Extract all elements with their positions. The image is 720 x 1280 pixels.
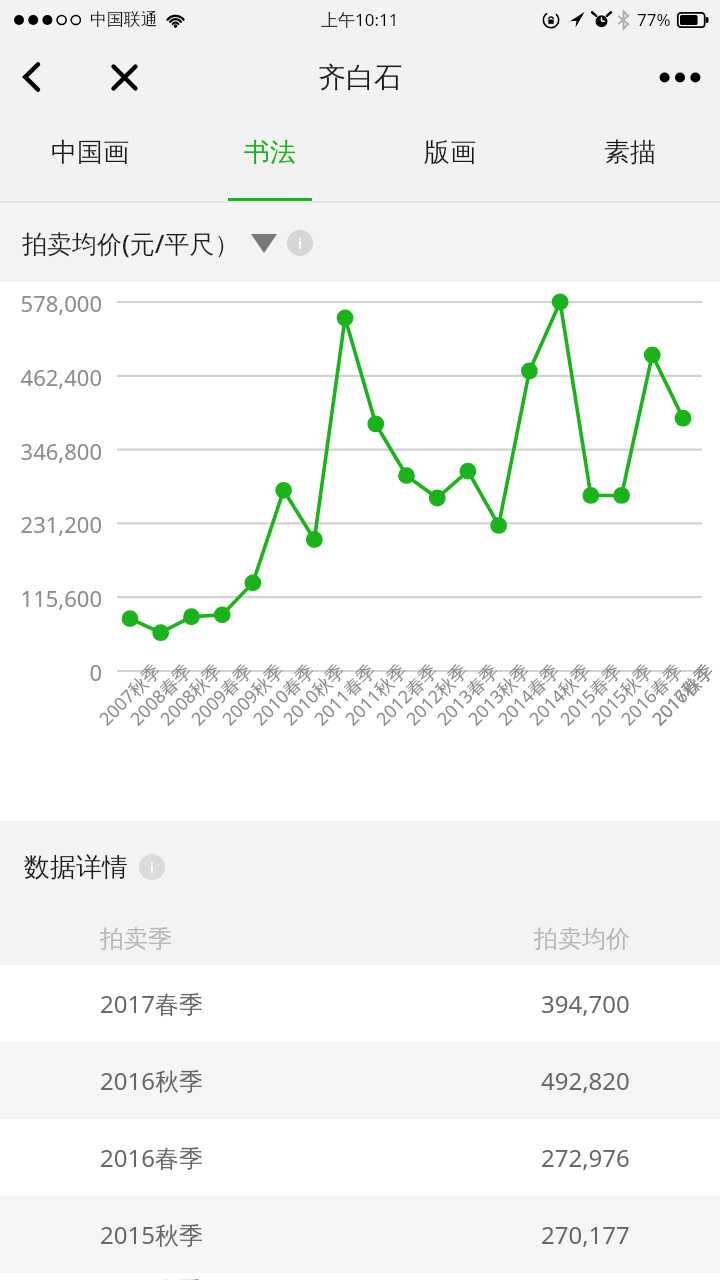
staticText: 115,600: [0, 583, 102, 613]
staticText: 2015春季: [100, 1273, 203, 1280]
staticText: 578,000: [0, 288, 102, 318]
button[interactable]: 书法: [180, 116, 360, 203]
staticText: 齐白石: [318, 60, 402, 95]
staticText: 版画: [424, 136, 476, 169]
staticText: 书法: [244, 136, 296, 169]
staticText: 2014春季: [493, 658, 565, 731]
staticText: 素描: [604, 136, 656, 169]
staticText: 2015春季: [555, 658, 627, 731]
staticText: 拍卖均价(元/平尺）: [22, 226, 240, 260]
button[interactable]: 2016春季: [0, 1119, 720, 1196]
button[interactable]: 拍卖均价(元/平尺）: [22, 226, 313, 260]
staticText: 2014秋季: [524, 658, 596, 731]
staticText: 270,177: [541, 1218, 630, 1251]
button[interactable]: Info: [287, 230, 313, 256]
staticText: 2011春季: [309, 658, 381, 731]
staticText: i: [150, 857, 154, 877]
staticText: 2012春季: [371, 658, 443, 731]
button[interactable]: 中国画: [0, 116, 180, 203]
staticText: 346,800: [0, 436, 102, 466]
staticText: 394,700: [541, 987, 630, 1020]
staticText: 2017春季: [100, 987, 203, 1020]
staticText: 2012秋季: [401, 658, 473, 731]
staticText: 中国联通: [90, 9, 158, 30]
staticText: 拍卖均价: [534, 924, 630, 954]
staticText: 2016秋季: [100, 1064, 203, 1097]
staticText: 2016春季: [100, 1141, 203, 1174]
button[interactable]: Close: [98, 51, 150, 103]
staticText: 2011秋季: [340, 658, 412, 731]
staticText: 2017春季: [647, 658, 719, 731]
staticText: i: [298, 233, 302, 253]
staticText: 0: [0, 657, 102, 687]
staticText: 492,820: [541, 1064, 630, 1097]
button[interactable]: 2016秋季: [0, 1042, 720, 1119]
staticText: 272,976: [541, 1141, 630, 1174]
staticText: 2016春季: [616, 658, 688, 731]
staticText: 上午10:11: [321, 8, 399, 31]
staticText: 77%: [637, 8, 671, 31]
staticText: 2015秋季: [100, 1218, 203, 1251]
button[interactable]: 2015秋季: [0, 1196, 720, 1273]
staticText: 2008春季: [125, 658, 197, 731]
button[interactable]: Info: [139, 854, 165, 880]
staticText: 2008秋季: [155, 658, 227, 731]
staticText: 2010秋季: [278, 658, 350, 731]
staticText: 拍卖季: [100, 924, 172, 954]
button[interactable]: 2015春季: [0, 1273, 720, 1280]
button[interactable]: More options: [652, 49, 708, 105]
button[interactable]: Back: [6, 51, 58, 103]
button[interactable]: 素描: [540, 116, 720, 203]
staticText: 231,200: [0, 509, 102, 539]
staticText: 2015秋季: [586, 658, 658, 731]
staticText: 数据详情: [24, 851, 128, 884]
staticText: 2016秋季: [647, 658, 719, 731]
staticText: 中国画: [51, 136, 129, 169]
staticText: 2009秋季: [217, 658, 289, 731]
staticText: 462,400: [0, 362, 102, 392]
staticText: 2007秋季: [94, 658, 166, 731]
staticText: 2009春季: [186, 658, 258, 731]
button[interactable]: 版画: [360, 116, 540, 203]
staticText: 2013春季: [432, 658, 504, 731]
button[interactable]: 2017春季: [0, 965, 720, 1042]
staticText: 2010春季: [248, 658, 320, 731]
staticText: 2013秋季: [463, 658, 535, 731]
